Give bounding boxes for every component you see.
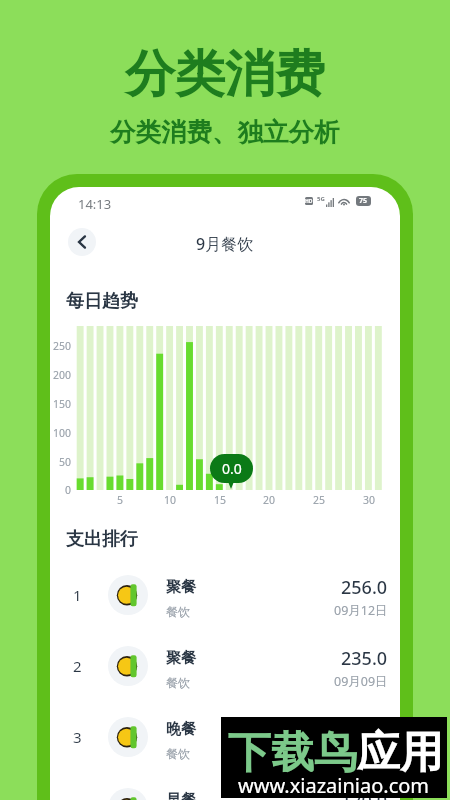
staticText: 分类消费、独立分析 <box>110 116 340 148</box>
button[interactable]: 3 <box>50 702 400 772</box>
staticText: 09月09日 <box>334 673 388 690</box>
staticText: 15 <box>214 493 227 507</box>
staticText: 3 <box>73 727 82 747</box>
staticText: 09月05日 <box>334 744 388 761</box>
staticText: 9月餐饮 <box>196 233 254 255</box>
staticText: 分类消费 <box>125 43 325 106</box>
staticText: www.xiazainiao.com <box>238 772 430 799</box>
staticText: 14:13 <box>78 195 112 213</box>
staticText: 1 <box>73 585 82 605</box>
staticText: 25 <box>313 493 326 507</box>
staticText: 20 <box>263 493 276 507</box>
staticText: 晚餐 <box>166 720 196 739</box>
staticText: 250 <box>53 339 72 353</box>
staticText: 每日趋势 <box>66 290 138 313</box>
staticText: 09月12日 <box>334 602 388 619</box>
staticText: 餐饮 <box>166 604 190 619</box>
button[interactable]: Back <box>68 228 96 256</box>
button[interactable]: 2 <box>50 631 400 701</box>
staticText: 235.0 <box>341 646 388 671</box>
staticText: 早餐 <box>166 791 196 800</box>
staticText: 150 <box>53 397 72 411</box>
staticText: 5G <box>317 195 325 203</box>
staticText: 30 <box>363 493 376 507</box>
staticText: 50 <box>59 455 72 469</box>
staticText: 聚餐 <box>166 649 196 668</box>
staticText: 应用 <box>357 726 443 780</box>
staticText: 下载鸟 <box>228 726 357 780</box>
staticText: 餐饮 <box>166 675 190 690</box>
staticText: 0.0 <box>222 459 242 478</box>
staticText: 180.0 <box>341 717 388 742</box>
staticText: 200 <box>53 368 72 382</box>
staticText: 120.0 <box>341 788 388 800</box>
button[interactable]: 1 <box>50 560 400 630</box>
staticText: 0 <box>65 483 72 497</box>
button[interactable]: 4 <box>50 773 400 800</box>
staticText: 支出排行 <box>66 528 138 551</box>
staticText: 75 <box>359 196 368 206</box>
staticText: 100 <box>53 426 72 440</box>
staticText: HD <box>305 198 313 205</box>
staticText: 餐饮 <box>166 746 190 761</box>
staticText: 256.0 <box>341 575 388 600</box>
staticText: 2 <box>73 656 82 676</box>
staticText: 聚餐 <box>166 578 196 597</box>
staticText: 10 <box>164 493 177 507</box>
staticText: 5 <box>117 493 124 507</box>
